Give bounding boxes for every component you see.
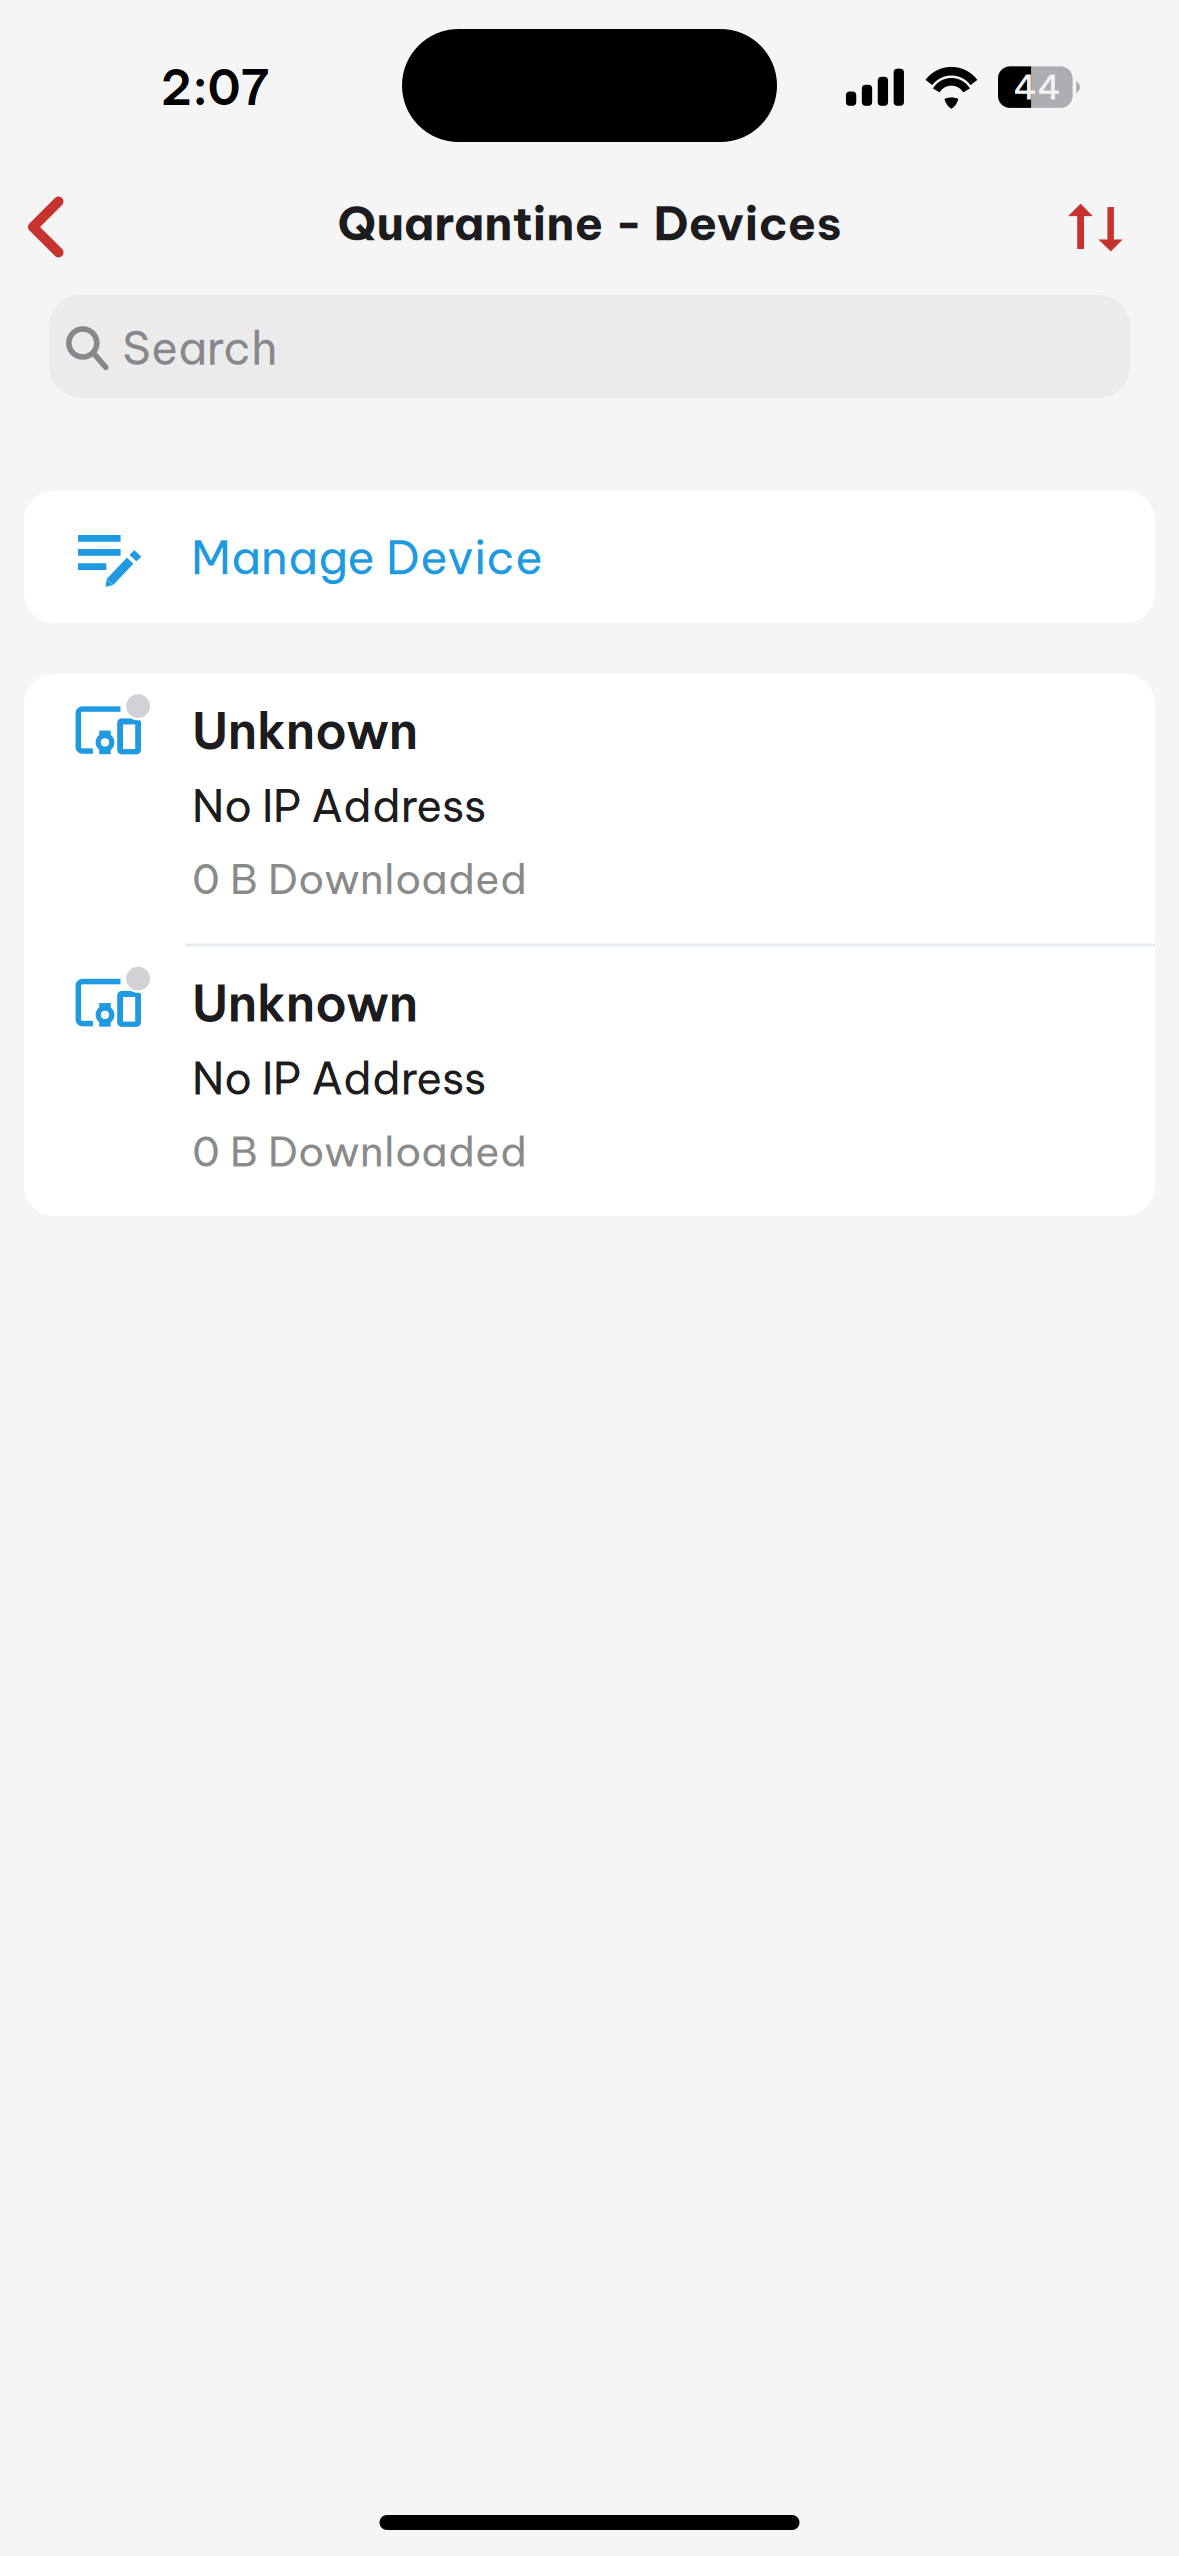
staticText: No IP Address: [192, 1050, 486, 1106]
button[interactable]: Manage Device: [24, 491, 1155, 623]
staticText: 2:07: [160, 57, 269, 118]
staticText: Search: [122, 319, 277, 377]
staticText: 44: [1013, 66, 1061, 108]
staticText: Manage Device: [191, 527, 543, 586]
button[interactable]: Sort order: [1038, 180, 1179, 262]
staticText: Unknown: [192, 700, 418, 762]
button[interactable]: Unknown: [24, 674, 1155, 943]
staticText: 0 B Downloaded: [192, 1125, 527, 1177]
staticText: 0 B Downloaded: [192, 853, 527, 905]
staticText: Quarantine - Devices: [337, 193, 841, 252]
staticText: Unknown: [192, 972, 418, 1034]
button[interactable]: Unknown: [24, 946, 1155, 1216]
button[interactable]: Back: [0, 174, 97, 267]
button[interactable]: Search: [49, 295, 1130, 398]
staticText: No IP Address: [192, 778, 486, 834]
